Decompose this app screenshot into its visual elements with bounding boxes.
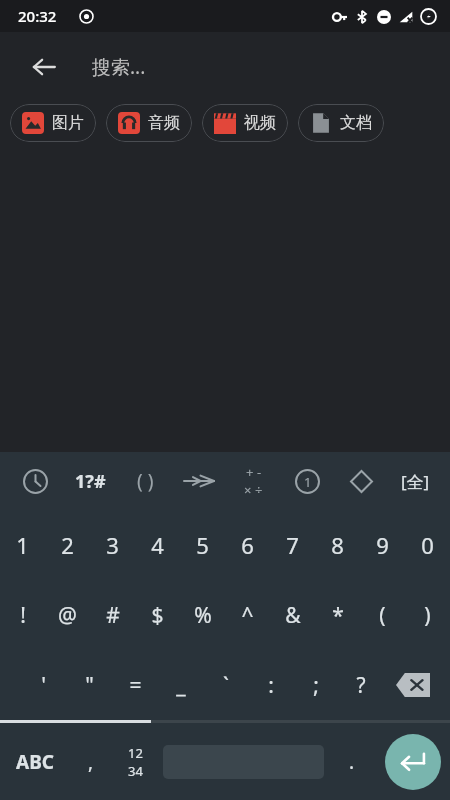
staticText: 0 bbox=[421, 530, 434, 560]
staticText: % bbox=[194, 601, 212, 630]
staticText: × bbox=[244, 481, 252, 499]
button[interactable]: $ bbox=[135, 580, 180, 650]
button[interactable]: ^ bbox=[225, 580, 270, 650]
staticText: . bbox=[349, 749, 355, 775]
staticText: , bbox=[88, 749, 94, 775]
staticText: ' bbox=[41, 671, 46, 700]
button[interactable]: ? bbox=[338, 650, 383, 720]
staticText: * bbox=[332, 601, 344, 630]
button[interactable]: ) bbox=[405, 580, 450, 650]
button[interactable]: 1 bbox=[0, 510, 45, 580]
button[interactable]: Back bbox=[22, 45, 66, 89]
staticText: ( ) bbox=[137, 468, 154, 494]
staticText: & bbox=[285, 601, 301, 630]
staticText: ABC bbox=[16, 749, 54, 775]
button[interactable]: Full width bbox=[388, 452, 442, 510]
staticText: 34 bbox=[128, 762, 143, 780]
button[interactable]: ! bbox=[0, 580, 45, 650]
staticText: ! bbox=[20, 601, 26, 630]
button[interactable]: & bbox=[270, 580, 315, 650]
staticText: 20:32 bbox=[18, 6, 57, 26]
staticText: ( bbox=[379, 601, 386, 630]
staticText: 1 bbox=[16, 530, 29, 560]
button[interactable]: 2 bbox=[45, 510, 90, 580]
button[interactable]: 8 bbox=[315, 510, 360, 580]
staticText: + bbox=[246, 463, 254, 481]
staticText: ÷ bbox=[255, 481, 263, 499]
staticText: _ bbox=[176, 671, 186, 700]
button[interactable]: Arrows bbox=[172, 452, 226, 510]
button[interactable]: 3 bbox=[90, 510, 135, 580]
staticText: ? bbox=[356, 671, 366, 700]
staticText: 视频 bbox=[244, 113, 276, 133]
button[interactable]: Backspace bbox=[383, 650, 442, 720]
button[interactable]: Symbols bbox=[63, 452, 118, 510]
button[interactable]: 文档 bbox=[298, 104, 384, 142]
button[interactable]: ( bbox=[360, 580, 405, 650]
staticText: - bbox=[257, 463, 262, 481]
staticText: ; bbox=[313, 671, 319, 700]
staticText: 9 bbox=[376, 530, 389, 560]
staticText: 12 bbox=[128, 744, 143, 762]
staticText: 搜索... bbox=[92, 54, 146, 80]
button[interactable]: Shapes bbox=[334, 452, 388, 510]
button[interactable]: ' bbox=[20, 650, 66, 720]
staticText: 6 bbox=[241, 530, 254, 560]
button[interactable]: 图片 bbox=[10, 104, 96, 142]
staticText: 图片 bbox=[52, 113, 84, 133]
button[interactable]: , bbox=[70, 723, 112, 800]
button[interactable]: Enter bbox=[385, 734, 441, 790]
button[interactable]: Brackets bbox=[118, 452, 172, 510]
button[interactable]: 0 bbox=[405, 510, 450, 580]
staticText: 1 bbox=[304, 473, 312, 491]
button[interactable]: _ bbox=[158, 650, 203, 720]
button[interactable]: % bbox=[180, 580, 225, 650]
staticText: 5 bbox=[196, 530, 209, 560]
staticText: 文档 bbox=[340, 113, 372, 133]
button[interactable]: * bbox=[315, 580, 360, 650]
staticText: 7 bbox=[286, 530, 299, 560]
button[interactable]: ` bbox=[203, 650, 248, 720]
staticText: 8 bbox=[331, 530, 344, 560]
staticText: ^ bbox=[241, 601, 254, 630]
staticText: 2 bbox=[61, 530, 74, 560]
button[interactable]: 12 bbox=[112, 723, 159, 800]
staticText: [全] bbox=[401, 470, 430, 493]
button[interactable]: ABC bbox=[0, 723, 70, 800]
button[interactable]: 音频 bbox=[106, 104, 192, 142]
button[interactable]: 6 bbox=[225, 510, 270, 580]
button[interactable]: Recent bbox=[8, 452, 63, 510]
button[interactable]: @ bbox=[45, 580, 90, 650]
button[interactable]: 4 bbox=[135, 510, 180, 580]
staticText: 4 bbox=[151, 530, 164, 560]
button[interactable]: 5 bbox=[180, 510, 225, 580]
button[interactable]: . bbox=[328, 723, 375, 800]
button[interactable]: " bbox=[66, 650, 112, 720]
button[interactable]: : bbox=[248, 650, 293, 720]
button[interactable]: ; bbox=[293, 650, 338, 720]
staticText: # bbox=[106, 601, 120, 630]
button[interactable]: Math bbox=[226, 452, 280, 510]
staticText: 1?# bbox=[75, 469, 106, 494]
staticText: ` bbox=[223, 671, 229, 700]
staticText: 音频 bbox=[148, 113, 180, 133]
staticText: $ bbox=[151, 601, 164, 630]
button[interactable]: = bbox=[112, 650, 158, 720]
button[interactable]: 9 bbox=[360, 510, 405, 580]
staticText: ) bbox=[424, 601, 431, 630]
staticText: @ bbox=[58, 601, 77, 630]
button[interactable]: 7 bbox=[270, 510, 315, 580]
button[interactable]: # bbox=[90, 580, 135, 650]
staticText: = bbox=[129, 671, 142, 700]
staticText: 3 bbox=[106, 530, 119, 560]
staticText: " bbox=[85, 671, 94, 700]
staticText: : bbox=[268, 671, 274, 700]
button[interactable]: 视频 bbox=[202, 104, 288, 142]
button[interactable]: Numbers bbox=[280, 452, 334, 510]
